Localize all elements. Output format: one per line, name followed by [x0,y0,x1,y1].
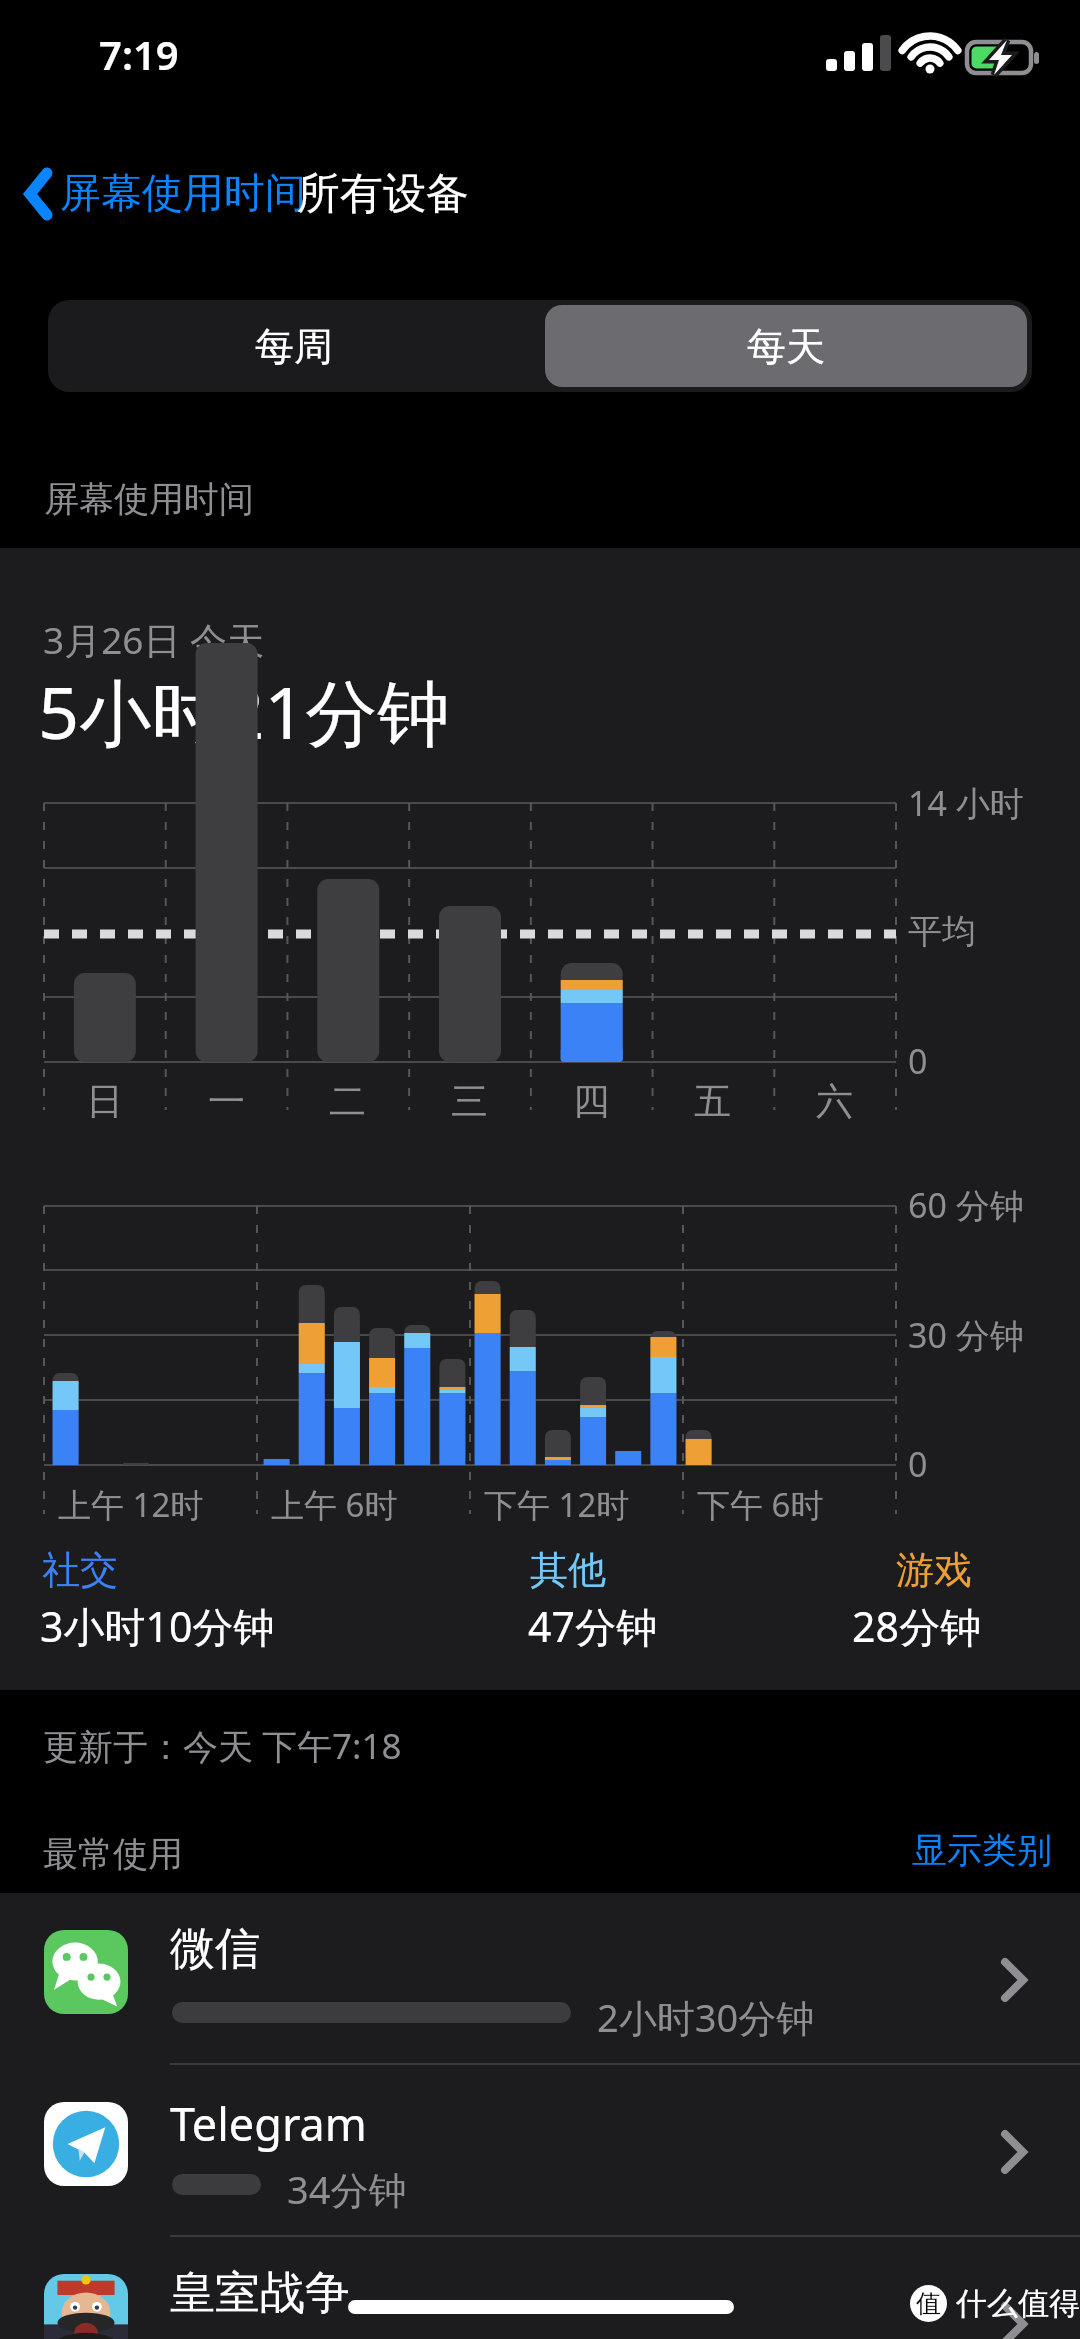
button[interactable]: 微信 [0,1893,1080,2065]
staticText: 每天 [747,322,825,371]
staticText: 每周 [255,322,333,371]
staticText: 六 [816,1078,853,1125]
button[interactable]: 每周 [53,305,535,387]
staticText: 其他 [530,1546,606,1594]
staticText: Telegram [170,2093,367,2154]
staticText: 下午 6时 [697,1482,824,1527]
staticText: 五 [694,1078,731,1125]
staticText: 34分钟 [287,2163,407,2215]
staticText: 微信 [170,1921,260,1978]
staticText: 日 [86,1078,123,1125]
staticText: 2小时30分钟 [597,1991,815,2043]
other: Open 皇室战争 details [1002,2303,1026,2339]
other: Signal, Wi-Fi and battery status [826,34,1042,80]
staticText: 60 分钟 [908,1182,1024,1228]
staticText: 更新于：今天 下午7:18 [43,1722,402,1770]
button[interactable]: 皇室战争 [0,2237,1080,2339]
staticText: 三 [451,1078,488,1125]
staticText: 最常使用 [43,1832,183,1876]
button[interactable]: 每天 [545,305,1027,387]
other: Open Telegram details [1002,2131,1026,2173]
staticText: 四 [573,1078,610,1125]
staticText: 7:19 [99,27,179,81]
staticText: 平均 [908,910,976,953]
staticText: 28分钟 [852,1598,981,1654]
staticText: 游戏 [896,1546,972,1594]
staticText: 上午 6时 [271,1482,398,1527]
button[interactable]: 屏幕使用时间 [12,150,320,238]
staticText: 47分钟 [528,1598,657,1654]
staticText: 什么值得买 [956,2284,1080,2323]
staticText: 一 [208,1078,245,1125]
button[interactable]: 显示类别 [884,1816,1080,1884]
staticText: 14 小时 [908,780,1024,826]
staticText: 30 分钟 [908,1312,1024,1358]
staticText: 屏幕使用时间 [60,168,306,220]
staticText: 5小时21分钟 [38,662,450,760]
staticText: 值 [916,2288,941,2319]
staticText: 3月26日 今天 [43,614,265,665]
other: Open 微信 details [1002,1959,1026,2001]
staticText: 屏幕使用时间 [44,477,254,521]
staticText: 0 [908,1441,928,1487]
staticText: 所有设备 [297,167,469,221]
staticText: 3小时10分钟 [40,1598,275,1654]
button[interactable]: Telegram [0,2065,1080,2237]
staticText: 上午 12时 [58,1482,204,1527]
staticText: 下午 12时 [484,1482,630,1527]
staticText: 社交 [42,1546,118,1594]
staticText: 皇室战争 [170,2265,350,2322]
staticText: 0 [908,1038,928,1084]
staticText: 二 [329,1078,366,1125]
staticText: 显示类别 [912,1828,1052,1872]
